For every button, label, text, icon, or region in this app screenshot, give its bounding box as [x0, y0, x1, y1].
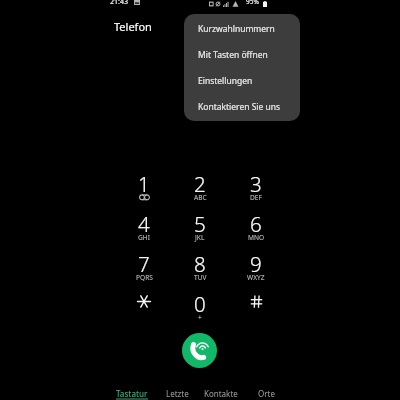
staticText: Einstellungen [198, 75, 253, 87]
staticText: 3 [250, 170, 262, 198]
staticText: DEF [250, 193, 262, 202]
button[interactable]: 9 [228, 247, 284, 287]
button[interactable]: Mit Tasten öffnen [184, 42, 300, 68]
button[interactable]: 7 [116, 247, 172, 287]
button[interactable] [228, 287, 284, 327]
button[interactable]: 3 [228, 167, 284, 207]
staticText: JKL [195, 233, 205, 242]
staticText: TUV [194, 273, 207, 282]
button[interactable]: Orte [242, 378, 290, 400]
staticText: 5 [194, 210, 206, 238]
button[interactable]: 8 [172, 247, 228, 287]
staticText: PQRS [136, 273, 153, 282]
button[interactable]: 0 [172, 287, 228, 327]
staticText: GHI [138, 233, 150, 242]
staticText: 6 [250, 210, 262, 238]
staticText: Mit Tasten öffnen [198, 49, 268, 61]
staticText: 1 [138, 170, 150, 198]
staticText: Tastatur [116, 388, 148, 399]
staticText: ABC [194, 193, 207, 202]
staticText: 95% [246, 0, 259, 6]
button[interactable]: Kontakte [197, 378, 245, 400]
staticText: Kontakte [204, 388, 238, 399]
button[interactable]: 4 [116, 207, 172, 247]
staticText: Kurzwahlnummern [198, 23, 275, 35]
button[interactable]: Tastatur [108, 378, 156, 400]
button[interactable]: Kontaktieren Sie uns [184, 94, 300, 120]
staticText: 8 [194, 250, 206, 278]
staticText: Kontaktieren Sie uns [198, 101, 281, 113]
button[interactable] [116, 287, 172, 327]
staticText: + [198, 313, 202, 322]
staticText: Orte [258, 388, 275, 399]
button[interactable]: Kurzwahlnummern [184, 16, 300, 42]
staticText: 7 [138, 250, 150, 278]
button[interactable]: 1 [116, 167, 172, 207]
staticText: WXYZ [247, 273, 265, 282]
button[interactable]: 5 [172, 207, 228, 247]
staticText: Letzte [166, 388, 189, 399]
button[interactable]: Einstellungen [184, 68, 300, 94]
staticText: Telefon [114, 19, 152, 34]
staticText: 0 [194, 290, 206, 318]
staticText: 21:43 [110, 0, 128, 7]
staticText: 4 [138, 210, 150, 238]
button[interactable]: 6 [228, 207, 284, 247]
staticText: 9 [250, 250, 262, 278]
staticText: MNO [248, 233, 265, 242]
staticText: 2 [194, 170, 206, 198]
button[interactable]: Anrufen [182, 333, 217, 368]
button[interactable]: Letzte [153, 378, 201, 400]
button[interactable]: 2 [172, 167, 228, 207]
